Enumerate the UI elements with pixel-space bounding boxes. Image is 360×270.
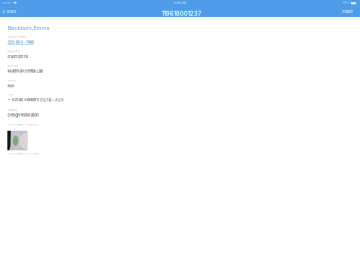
staticText: ATTACHMENT (1 IMAGES) — [7, 123, 39, 126]
staticText: 100% — [342, 1, 349, 4]
staticText: ITEM — [7, 93, 13, 96]
staticText: 119618001237 — [162, 10, 201, 17]
button[interactable]: Back — [0, 6, 19, 17]
staticText: Back — [7, 9, 16, 14]
button[interactable]: Blackburn, Emma — [7, 25, 49, 31]
staticText: OFFICE PHONE — [7, 35, 25, 38]
button[interactable]: Attach — [338, 6, 360, 17]
staticText: DOCTOR — [7, 64, 18, 67]
button[interactable]: 323-900-7866 — [7, 39, 33, 44]
button[interactable]: Attachment image — [7, 131, 27, 150]
staticText: 323-900-7866 — [7, 39, 33, 44]
staticText: 05/21/2018 — [7, 54, 27, 59]
staticText: Maltman Dental Lab — [7, 68, 42, 73]
staticText: N/A — [7, 83, 14, 88]
staticText: Design restoration — [7, 113, 38, 117]
staticText: DUE DATE — [7, 50, 19, 53]
staticText: ATTACHMENT (0 OTHER) — [7, 152, 39, 155]
staticText: TOOTH — [7, 79, 16, 82]
staticText: Attach — [342, 9, 353, 14]
staticText: 9:34 AM — [174, 1, 186, 4]
staticText: Carrier — [2, 1, 10, 4]
staticText: Blackburn, Emma — [7, 25, 49, 31]
staticText: e.max Veneers (12,13) - A2.5 — [12, 97, 63, 102]
staticText: STATUS — [7, 109, 17, 111]
